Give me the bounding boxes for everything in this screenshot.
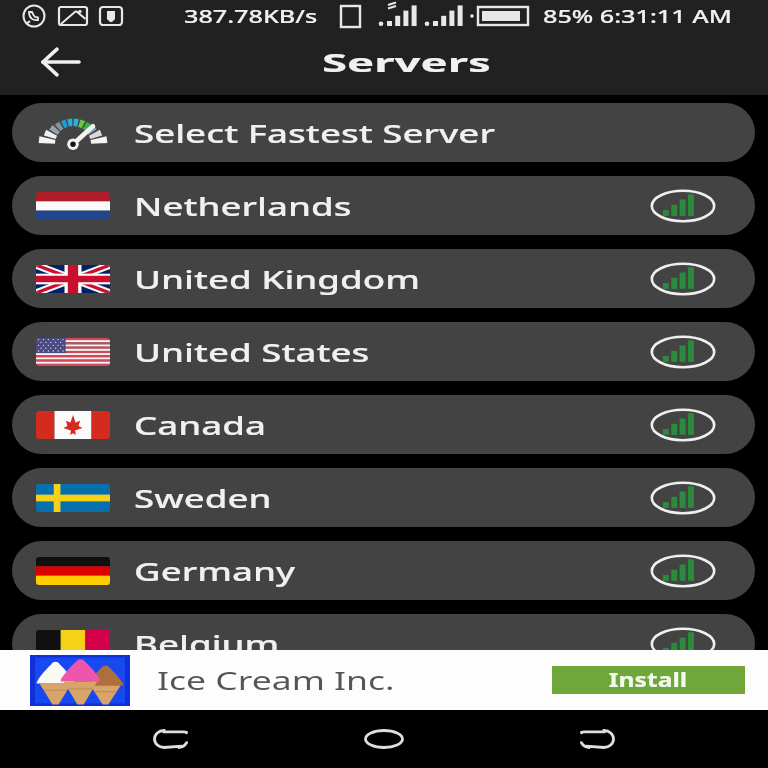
staticText: 85% 6:31:11 AM	[543, 4, 732, 29]
button[interactable]: Sweden	[12, 468, 755, 527]
button[interactable]: Germany	[12, 541, 755, 600]
button[interactable]: Install	[552, 666, 745, 694]
staticText: Sweden	[134, 480, 272, 515]
button[interactable]: Netherlands	[12, 176, 755, 235]
button[interactable]: United States	[12, 322, 755, 381]
staticText: Select Fastest Server	[134, 115, 495, 150]
button[interactable]: Home	[356, 711, 412, 767]
button[interactable]: Canada	[12, 395, 755, 454]
staticText: Germany	[134, 553, 296, 588]
button[interactable]: Back	[40, 41, 82, 83]
staticText: 387.78KB/s	[184, 4, 318, 29]
button[interactable]: Recent apps	[143, 711, 199, 767]
staticText: United States	[134, 334, 369, 369]
staticText: Servers	[322, 45, 491, 79]
button[interactable]: United Kingdom	[12, 249, 755, 308]
staticText: Ice Cream Inc.	[157, 663, 396, 697]
button[interactable]: Belgium	[12, 614, 755, 673]
staticText: Canada	[134, 407, 266, 442]
button[interactable]: Back	[569, 711, 625, 767]
staticText: Install	[609, 667, 688, 693]
staticText: Belgium	[134, 626, 281, 661]
staticText: Netherlands	[134, 188, 352, 223]
button[interactable]: Select Fastest Server	[12, 103, 755, 162]
staticText: United Kingdom	[134, 261, 420, 296]
